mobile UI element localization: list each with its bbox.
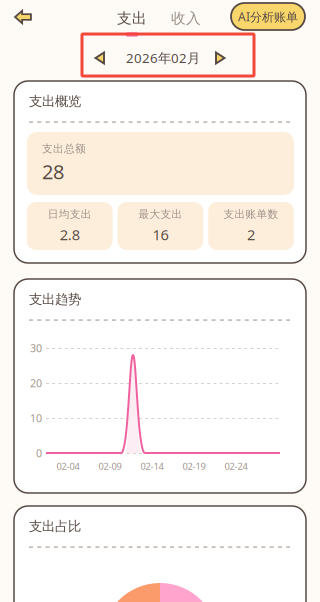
staticText: 日均支出 [48, 208, 92, 221]
button[interactable]: 支出 [109, 9, 155, 37]
staticText: 0 [36, 446, 42, 460]
staticText: 支出占比 [29, 518, 81, 534]
staticText: 2.8 [60, 225, 80, 244]
staticText: 2 [247, 225, 255, 244]
staticText: 02-14 [140, 460, 163, 472]
staticText: 支出总额 [42, 142, 86, 155]
staticText: 02-04 [56, 460, 79, 472]
button[interactable]: Back [8, 3, 38, 31]
staticText: 支出趋势 [29, 291, 81, 307]
staticText: 02-24 [224, 460, 247, 472]
staticText: 10 [30, 411, 42, 425]
staticText: 支出概览 [29, 93, 81, 109]
button[interactable]: 收入 [163, 9, 209, 37]
staticText: 30 [30, 341, 42, 355]
staticText: 支出账单数 [223, 208, 278, 221]
staticText: 收入 [171, 9, 201, 27]
staticText: 16 [152, 225, 168, 244]
staticText: 02-19 [182, 460, 205, 472]
staticText: 支出 [117, 9, 147, 27]
staticText: 02-09 [98, 460, 121, 472]
staticText: 最大支出 [138, 208, 182, 221]
staticText: AI分析账单 [238, 8, 298, 24]
staticText: 28 [42, 158, 64, 185]
button[interactable]: AI分析账单 [231, 3, 305, 30]
button[interactable]: Previous month [94, 51, 106, 65]
staticText: 2026年02月 [126, 49, 200, 67]
button[interactable]: Next month [214, 51, 226, 65]
staticText: 20 [30, 376, 42, 390]
